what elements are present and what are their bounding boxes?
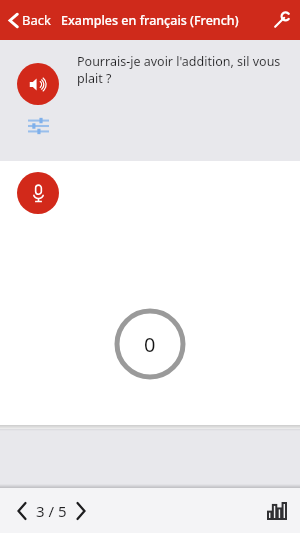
staticText: Examples en français (French): [61, 12, 239, 29]
button[interactable]: Statistics: [262, 496, 292, 526]
staticText: 3 / 5: [36, 501, 67, 521]
staticText: 0: [144, 331, 156, 358]
button[interactable]: 0: [114, 308, 186, 380]
button[interactable]: Back: [4, 7, 55, 33]
button[interactable]: Next: [69, 499, 93, 523]
button[interactable]: Record: [17, 172, 59, 214]
button[interactable]: Settings: [264, 2, 300, 38]
staticText: Back: [22, 11, 51, 29]
button[interactable]: Play audio: [17, 63, 59, 105]
staticText: Pourrais-je avoir l'addition, sil vous p…: [77, 53, 285, 87]
button[interactable]: Previous: [10, 499, 34, 523]
button[interactable]: Audio settings: [22, 110, 54, 142]
